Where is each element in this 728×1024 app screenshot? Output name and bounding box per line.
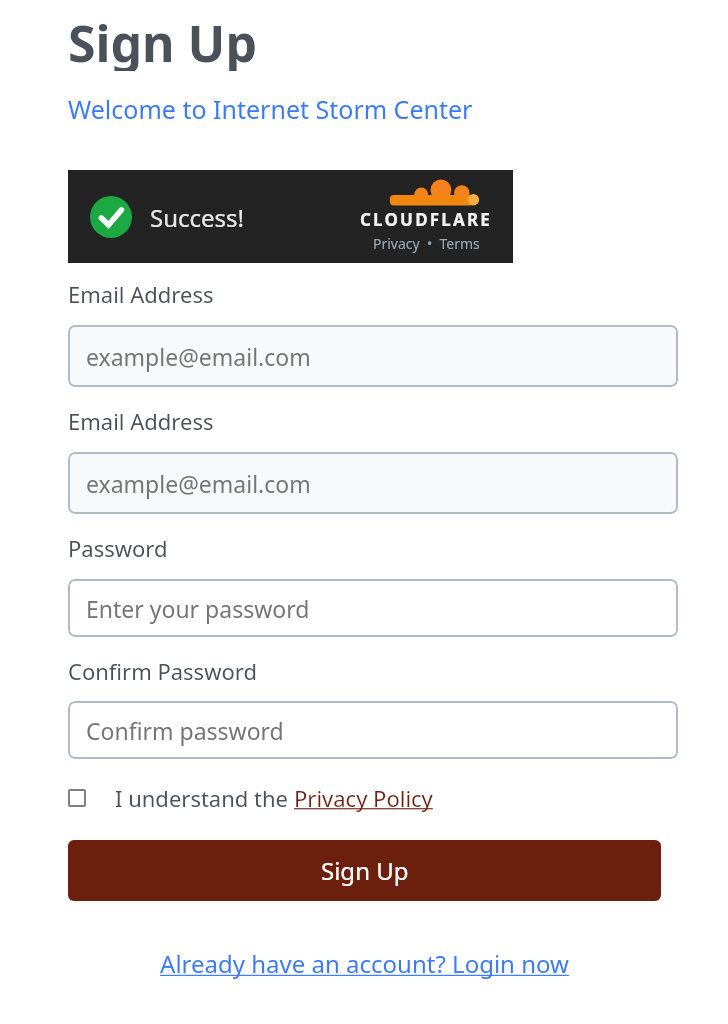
staticText: example@email.com [86,468,311,499]
staticText: Sign Up [321,854,409,887]
button[interactable]: example@email.com [68,325,678,387]
button[interactable]: Privacy Policy [294,783,433,813]
staticText: CLOUDFLARE [360,208,493,231]
button[interactable]: I understand the Privacy Policy [68,789,86,807]
staticText: I understand the [115,783,294,813]
button[interactable]: example@email.com [68,452,678,514]
button[interactable]: Confirm password [68,701,678,759]
staticText: Confirm Password [68,656,257,686]
staticText: Password [68,533,168,563]
staticText: Privacy • Terms [373,234,480,253]
staticText: Success! [150,201,245,234]
button[interactable]: Sign Up [68,840,661,901]
button[interactable]: Already have an account? Login now [160,947,569,980]
staticText: Sign Up [68,9,257,71]
button[interactable]: Enter your password [68,579,678,637]
staticText: Email Address [68,279,214,309]
staticText: Enter your password [86,593,310,624]
button[interactable]: Success! [68,170,513,263]
staticText: example@email.com [86,341,311,372]
staticText: Email Address [68,406,214,436]
staticText: Confirm password [86,715,284,746]
button[interactable]: Welcome to Internet Storm Center [68,92,473,126]
